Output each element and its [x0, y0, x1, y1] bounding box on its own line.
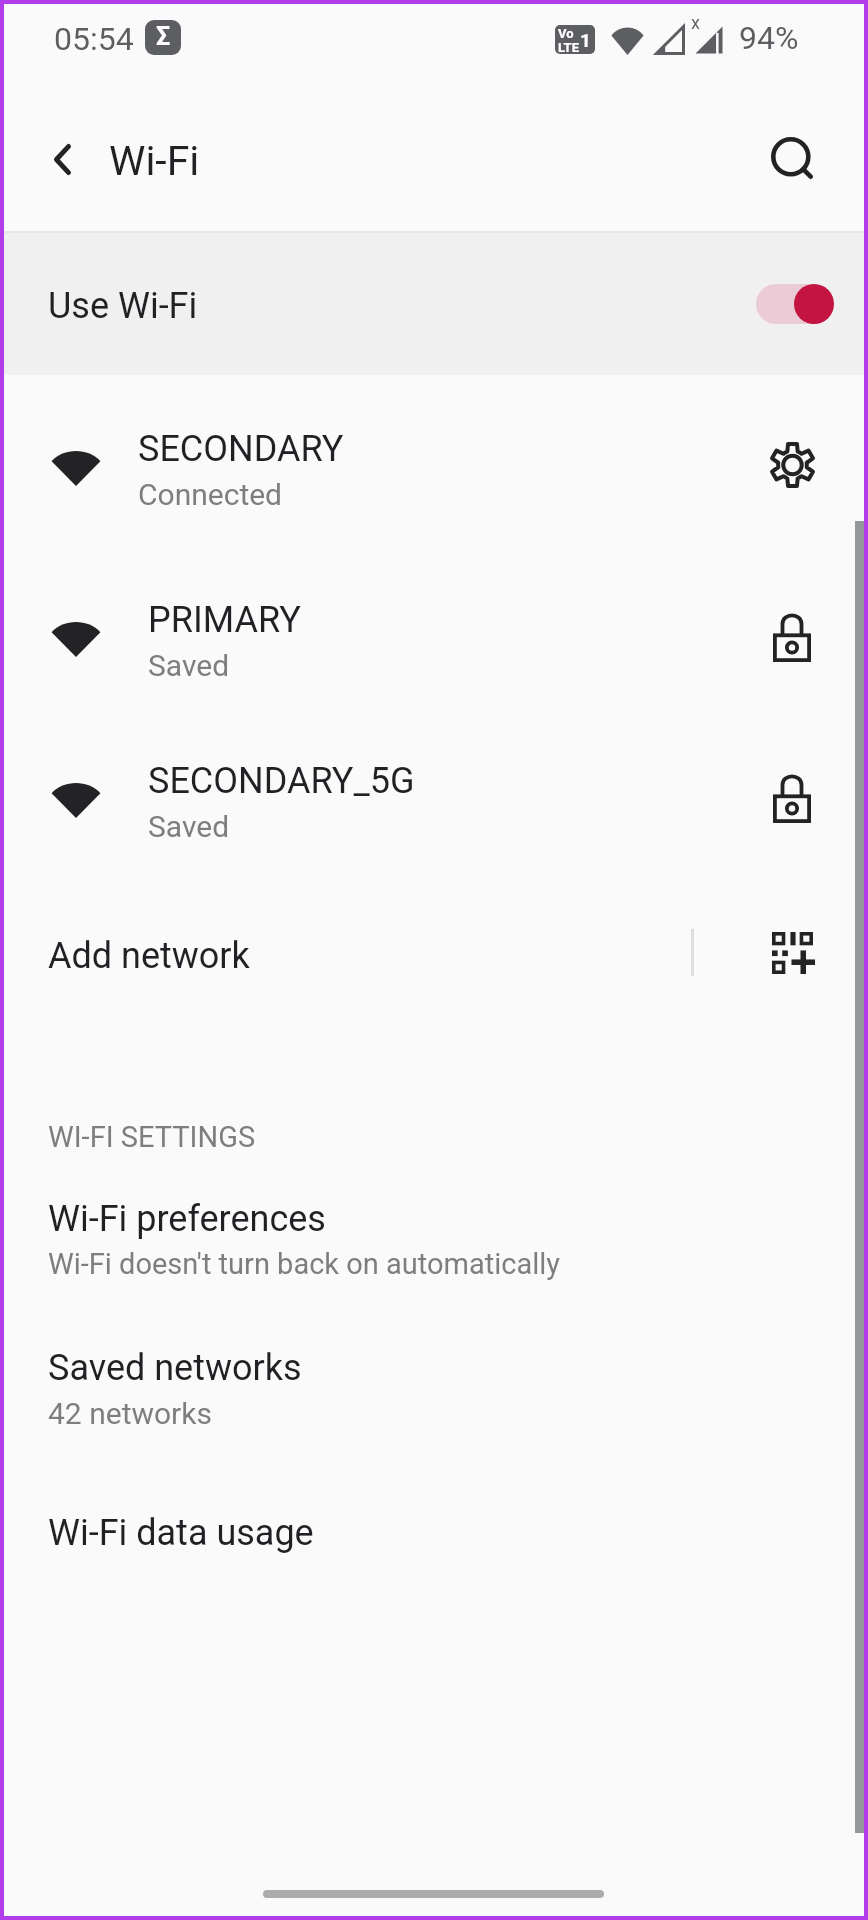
staticText: Add network	[48, 935, 250, 977]
button[interactable]: SECONDARY_5G	[0, 714, 868, 869]
staticText: x	[691, 12, 700, 33]
button[interactable]: Scan QR code to add a network	[757, 917, 829, 989]
staticText: PRIMARY	[148, 599, 301, 641]
button[interactable]: Use Wi-Fi toggle, on	[748, 276, 841, 332]
staticText: SECONDARY	[138, 428, 344, 470]
staticText: LTE	[558, 40, 579, 54]
button[interactable]: Add network	[0, 888, 868, 1018]
button[interactable]: Search	[756, 122, 828, 194]
staticText: Vo	[558, 26, 574, 41]
button[interactable]: SECONDARY	[0, 382, 868, 537]
staticText: Σ	[156, 22, 171, 51]
staticText: 05:54	[54, 20, 134, 58]
staticText: 1	[580, 29, 591, 51]
staticText: Saved networks	[48, 1347, 302, 1389]
button[interactable]: Wi-Fi data usage	[0, 1511, 868, 1585]
button[interactable]: Secured network	[756, 761, 828, 833]
staticText: Wi-Fi	[109, 137, 200, 185]
button[interactable]: Secured network	[756, 600, 828, 672]
button[interactable]: PRIMARY	[0, 553, 868, 708]
button[interactable]: Use Wi-Fi	[0, 233, 868, 375]
button[interactable]: Wi-Fi preferences	[0, 1197, 868, 1323]
button[interactable]: Network settings	[756, 429, 828, 501]
staticText: Use Wi-Fi	[48, 285, 198, 327]
button[interactable]: Saved networks	[0, 1346, 868, 1472]
staticText: Wi-Fi doesn't turn back on automatically	[48, 1247, 561, 1281]
staticText: Connected	[138, 477, 283, 512]
staticText: SECONDARY_5G	[148, 760, 415, 802]
staticText: Saved	[148, 809, 230, 844]
staticText: Wi-Fi preferences	[48, 1198, 326, 1240]
button[interactable]: Navigate up	[28, 125, 96, 193]
staticText: Saved	[148, 648, 230, 683]
staticText: WI-FI SETTINGS	[48, 1120, 256, 1154]
staticText: 42 networks	[48, 1396, 212, 1431]
staticText: Wi-Fi data usage	[48, 1512, 314, 1554]
staticText: 94%	[739, 19, 799, 57]
